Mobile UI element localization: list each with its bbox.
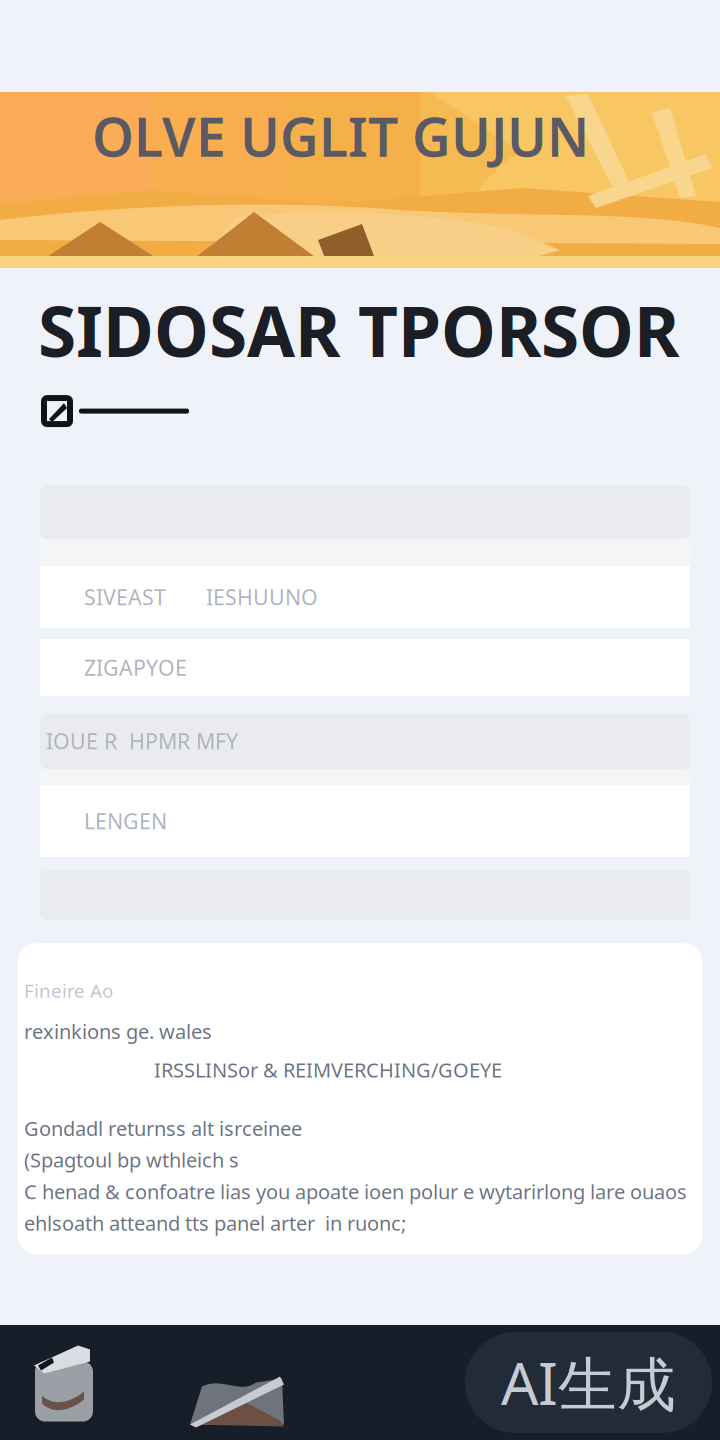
staticText: ehlsoath atteand tts panel arter in ruon… [24, 1210, 406, 1236]
button[interactable]: LENGEN [40, 785, 690, 857]
staticText: AI生成 [501, 1343, 676, 1422]
button[interactable]: Materials [12, 1325, 116, 1440]
staticText: IESHUUNO [206, 583, 318, 611]
button[interactable]: IOUE R HPMR MFY [40, 713, 690, 769]
button[interactable]: Scenes [186, 1313, 290, 1440]
staticText: OLVE UGLIT GUJUN [92, 101, 589, 171]
staticText: ZIGAPYOE [84, 653, 187, 682]
staticText: LENGEN [84, 807, 167, 835]
button[interactable]: ZIGAPYOE [40, 639, 690, 696]
button[interactable]: AI生成 [465, 1332, 712, 1433]
staticText: rexinkions ge. wales [24, 1018, 212, 1044]
staticText: IOUE R HPMR MFY [46, 727, 238, 755]
staticText: Fineire Ao [24, 978, 113, 1003]
staticText: IRSSLINSor & REIMVERCHING/GOEYE [154, 1056, 502, 1083]
staticText: C henad & confoatre lias you apoate ioen… [24, 1178, 687, 1205]
staticText: SIVEAST [84, 583, 166, 611]
staticText: SIDOSAR TPORSOR [38, 284, 679, 376]
button[interactable]: SIVEAST [40, 566, 690, 628]
staticText: (Spagtoul bp wthleich s [24, 1146, 239, 1173]
staticText: Gondadl returnss alt isrceinee [24, 1115, 302, 1142]
